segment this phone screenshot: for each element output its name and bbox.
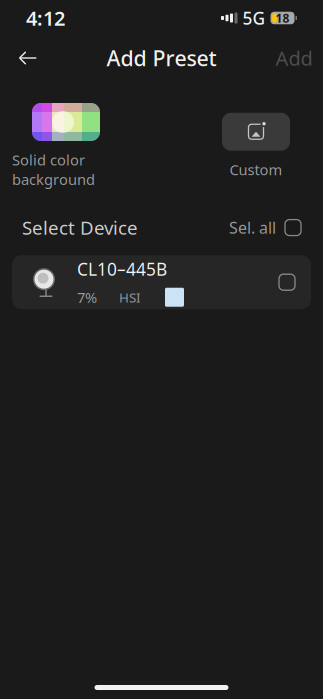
button[interactable]: CL10–445B [12,255,311,309]
staticText: Solid color background [12,150,95,189]
staticText: 4:12 [26,5,65,31]
staticText: 5G [242,6,265,29]
button[interactable]: Back [6,36,50,80]
staticText: CL10–445B [77,257,167,280]
staticText: Add Preset [106,44,216,72]
staticText: Select Device [22,215,138,240]
button[interactable]: Custom [201,113,311,179]
button[interactable]: Add [271,36,317,80]
button[interactable]: Sel. all [229,211,301,244]
staticText: Custom [229,160,282,179]
button[interactable]: Solid color background [12,103,164,189]
staticText: HSI [119,288,141,306]
staticText: Sel. all [229,217,276,238]
staticText: 18 [275,10,289,26]
staticText: Add [275,45,312,71]
staticText: 7% [77,287,97,307]
